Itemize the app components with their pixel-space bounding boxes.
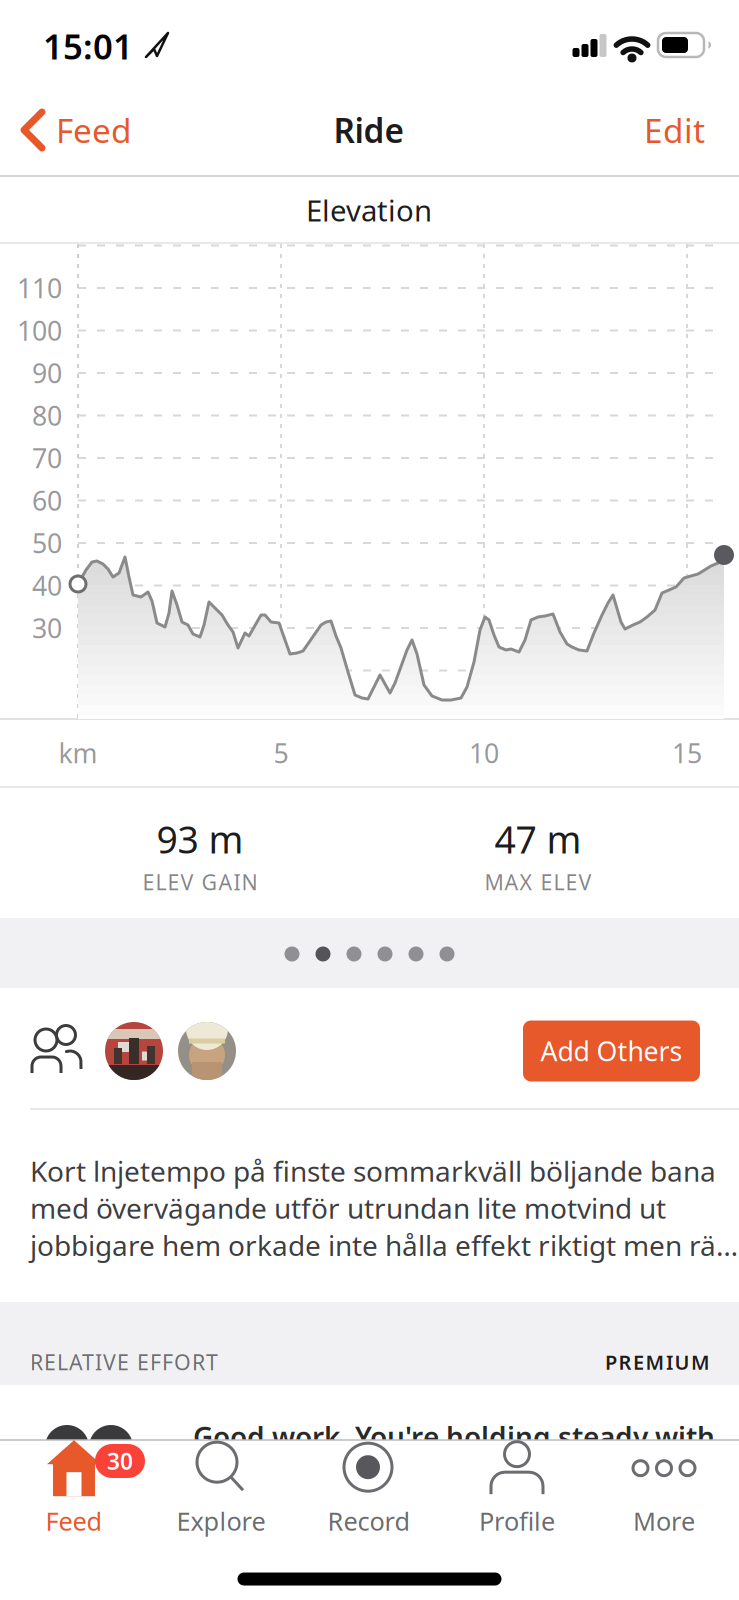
staticText: Explore [176,1504,265,1538]
staticText: Ride [333,108,404,152]
button[interactable]: Record [296,1434,442,1544]
staticText: Profile [479,1504,555,1538]
staticText: km [58,735,97,771]
staticText: Add Others [540,1033,682,1069]
staticText: 47 m [494,814,581,864]
button[interactable]: Add Others [523,1020,700,1081]
staticText: 15:01 [43,23,133,69]
button[interactable]: Back to Feed [20,95,180,165]
staticText: 100 [17,313,62,348]
staticText: MAX ELEV [484,868,591,896]
staticText: 10 [469,735,499,771]
button[interactable]: Feed [1,1434,147,1544]
button[interactable]: Athlete [178,1022,236,1080]
staticText: PREMIUM [605,1349,710,1375]
staticText: More [633,1504,695,1538]
staticText: 70 [32,440,62,476]
staticText: Record [327,1504,410,1538]
staticText: 5 [273,735,288,771]
staticText: 93 m [156,814,243,864]
staticText: 30 [32,610,62,646]
staticText: 30 [107,1446,133,1476]
staticText: 60 [32,483,62,518]
staticText: med övervägande utför utrundan lite motv… [30,1189,666,1227]
button[interactable]: Explore [148,1434,294,1544]
staticText: ELEV GAIN [142,868,257,896]
staticText: Feed [45,1504,102,1538]
staticText: 15 [672,735,702,771]
staticText: 90 [32,355,62,391]
staticText: Kort lnjetempo på finste sommarkväll böl… [30,1152,716,1189]
staticText: Edit [644,108,705,152]
staticText: Good work. You're holding steady with [193,1418,715,1456]
staticText: 80 [32,398,62,433]
staticText: 50 [32,525,62,561]
button[interactable]: Edit [595,95,705,165]
button[interactable]: More [591,1434,737,1544]
staticText: 40 [32,568,62,603]
button[interactable]: Athlete [105,1022,163,1080]
button[interactable]: Profile [444,1434,590,1544]
staticText: Feed [56,108,132,152]
staticText: 110 [17,270,62,306]
staticText: jobbigare hem orkade inte hålla effekt r… [30,1227,738,1264]
staticText: Elevation [306,190,432,229]
staticText: RELATIVE EFFORT [30,1348,218,1376]
